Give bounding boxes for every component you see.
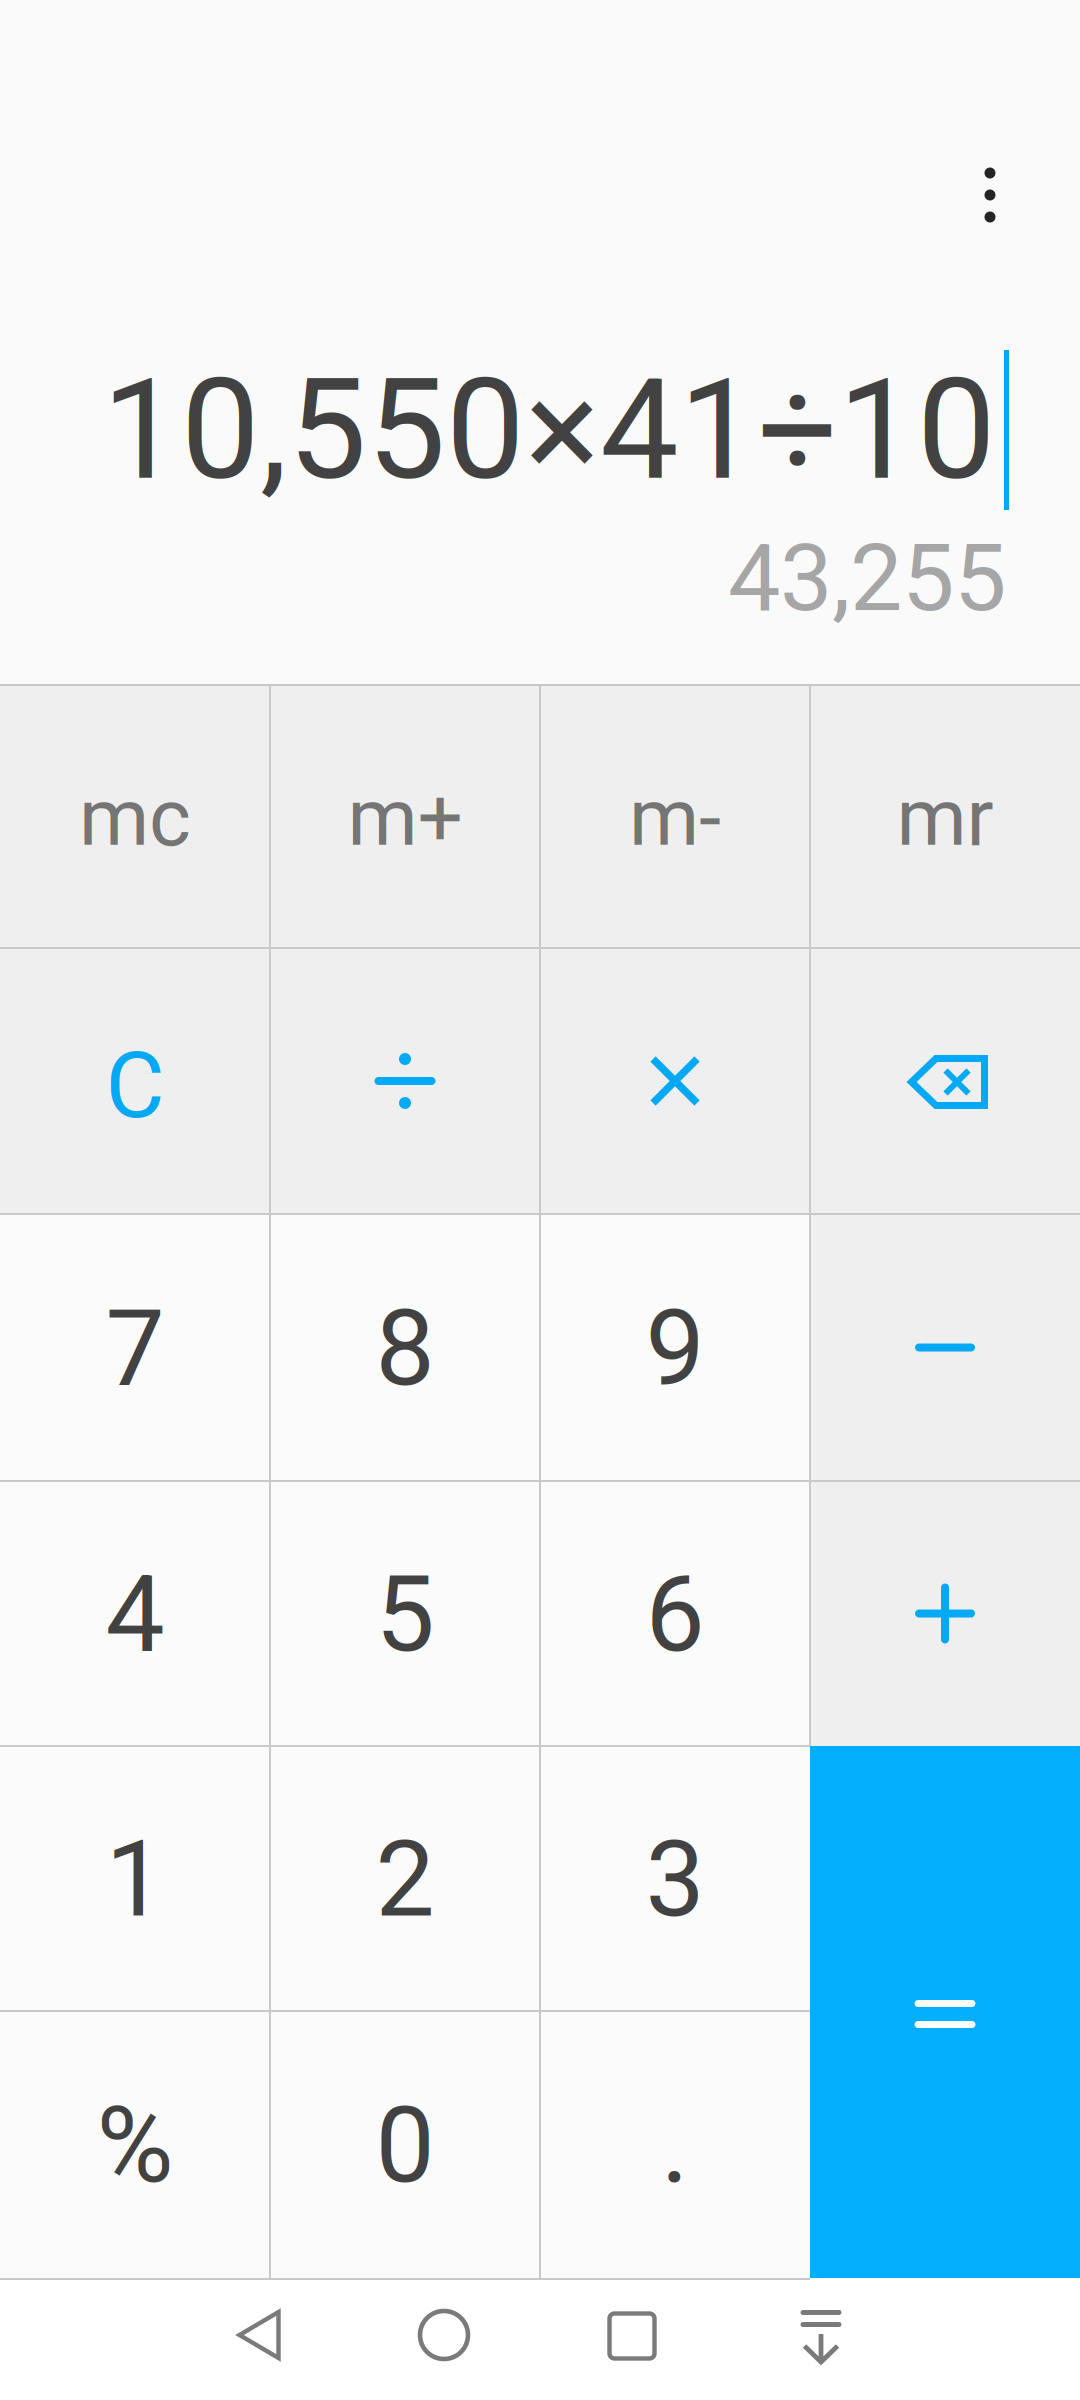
staticText: 1 <box>105 1818 164 1941</box>
staticText: mc <box>79 771 191 865</box>
staticText: . <box>661 2084 689 2207</box>
button[interactable]: 5 <box>270 1481 540 1746</box>
staticText: 6 <box>645 1553 704 1676</box>
button[interactable]: Divide <box>270 948 540 1214</box>
button[interactable]: . <box>540 2011 810 2278</box>
button[interactable]: 4 <box>0 1481 270 1746</box>
staticText: 0 <box>375 2084 434 2207</box>
button[interactable]: Hide keyboard <box>746 2263 896 2385</box>
staticText: 5 <box>375 1553 434 1676</box>
button[interactable]: mc <box>0 684 270 948</box>
staticText: 8 <box>375 1287 434 1410</box>
staticText: mr <box>896 771 993 865</box>
staticText: 43,255 <box>728 523 1006 633</box>
button[interactable]: Back <box>184 2274 334 2396</box>
staticText: 10,550×41÷10 <box>102 348 996 512</box>
staticText: m- <box>629 771 721 865</box>
staticText: 4 <box>105 1553 164 1676</box>
button[interactable]: Equals <box>810 1746 1080 2278</box>
button[interactable]: m- <box>540 684 810 948</box>
button[interactable]: Plus <box>810 1481 1080 1746</box>
button[interactable]: 7 <box>0 1214 270 1481</box>
button[interactable]: 8 <box>270 1214 540 1481</box>
button[interactable]: 9 <box>540 1214 810 1481</box>
button[interactable]: m+ <box>270 684 540 948</box>
button[interactable]: 2 <box>270 1746 540 2011</box>
button[interactable]: C <box>0 948 270 1214</box>
staticText: 2 <box>375 1818 434 1941</box>
button[interactable]: 1 <box>0 1746 270 2011</box>
staticText: 3 <box>645 1818 704 1941</box>
staticText: % <box>96 2084 173 2207</box>
button[interactable]: mr <box>810 684 1080 948</box>
button[interactable]: 6 <box>540 1481 810 1746</box>
staticText: 9 <box>645 1287 704 1410</box>
staticText: m+ <box>347 771 462 865</box>
button[interactable]: Multiply <box>540 948 810 1214</box>
button[interactable]: More options <box>925 110 1055 280</box>
button[interactable]: Minus <box>810 1214 1080 1481</box>
button[interactable]: Backspace <box>810 948 1080 1214</box>
button[interactable]: Recents <box>557 2275 707 2397</box>
button[interactable]: Home <box>369 2274 519 2396</box>
staticText: C <box>105 1033 164 1139</box>
button[interactable]: 0 <box>270 2011 540 2278</box>
staticText: 7 <box>105 1287 164 1410</box>
button[interactable]: % <box>0 2011 270 2278</box>
button[interactable]: 3 <box>540 1746 810 2011</box>
